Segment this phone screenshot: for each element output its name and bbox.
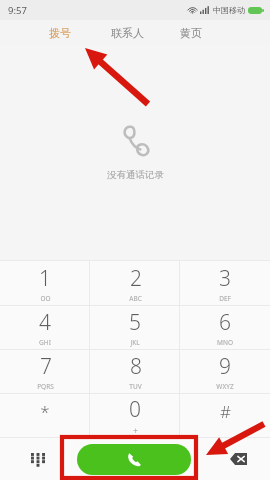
staticText: 1 <box>39 264 51 293</box>
staticText: 2 <box>130 264 142 293</box>
staticText: JKL <box>130 338 140 347</box>
staticText: 拨号 <box>49 26 71 40</box>
staticText: 6 <box>219 308 231 337</box>
button[interactable]: 4 <box>0 306 90 349</box>
button[interactable]: 7 <box>0 350 90 393</box>
button[interactable]: 0 <box>90 394 180 437</box>
staticText: * <box>40 400 50 423</box>
staticText: 中国移动 <box>213 5 245 15</box>
button[interactable]: 拨号 <box>46 20 74 46</box>
staticText: 黄页 <box>180 26 202 40</box>
button[interactable]: Delete <box>222 443 254 475</box>
staticText: 5 <box>129 308 141 337</box>
staticText: 8 <box>130 352 142 381</box>
staticText: 9:57 <box>8 4 27 17</box>
staticText: + <box>133 425 138 436</box>
button[interactable]: 3 <box>180 261 270 305</box>
button[interactable]: 黄页 <box>177 20 205 46</box>
staticText: GHI <box>39 338 51 347</box>
button[interactable]: 联系人 <box>108 20 147 46</box>
button[interactable]: 1 <box>0 261 90 305</box>
staticText: ABC <box>129 294 142 303</box>
staticText: 7 <box>40 352 52 381</box>
button[interactable]: 2 <box>90 261 180 305</box>
staticText: MNO <box>217 338 233 347</box>
staticText: PQRS <box>37 382 54 391</box>
staticText: WXYZ <box>216 382 234 391</box>
button[interactable]: 5 <box>90 306 180 349</box>
button[interactable]: 6 <box>180 306 270 349</box>
staticText: TUV <box>129 382 142 391</box>
staticText: 4 <box>39 308 51 337</box>
staticText: 没有通话记录 <box>107 169 164 181</box>
staticText: 联系人 <box>111 26 144 40</box>
staticText: DEF <box>219 294 231 303</box>
staticText: OO <box>40 294 51 303</box>
button[interactable]: Show keypad <box>22 443 54 475</box>
staticText: # <box>220 400 231 423</box>
staticText: 3 <box>219 264 231 293</box>
button[interactable]: # <box>180 394 270 437</box>
button[interactable]: 9 <box>180 350 270 393</box>
staticText: 0 <box>129 395 141 424</box>
staticText: 9 <box>219 352 231 381</box>
button[interactable]: 8 <box>90 350 180 393</box>
button[interactable]: Call <box>77 444 191 475</box>
button[interactable]: * <box>0 394 90 437</box>
